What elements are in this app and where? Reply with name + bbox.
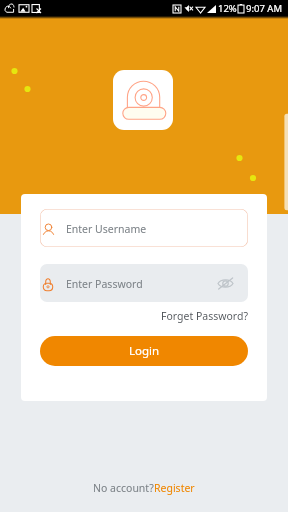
staticText: 12% (218, 2, 237, 15)
staticText: Register (154, 481, 195, 495)
button[interactable]: Enter Username (40, 209, 248, 247)
staticText: Enter Password (66, 277, 143, 291)
button[interactable]: Register (154, 481, 195, 495)
staticText: Enter Username (66, 222, 147, 236)
staticText: No account? (93, 481, 154, 495)
staticText: 9:07 AM (246, 2, 283, 15)
button[interactable]: Show password (213, 272, 237, 294)
staticText: Login (129, 343, 160, 359)
button[interactable]: Forget Password? (161, 309, 248, 323)
staticText: Forget Password? (161, 309, 248, 323)
button[interactable]: Enter Password (40, 264, 248, 302)
button[interactable]: Login (40, 336, 248, 366)
